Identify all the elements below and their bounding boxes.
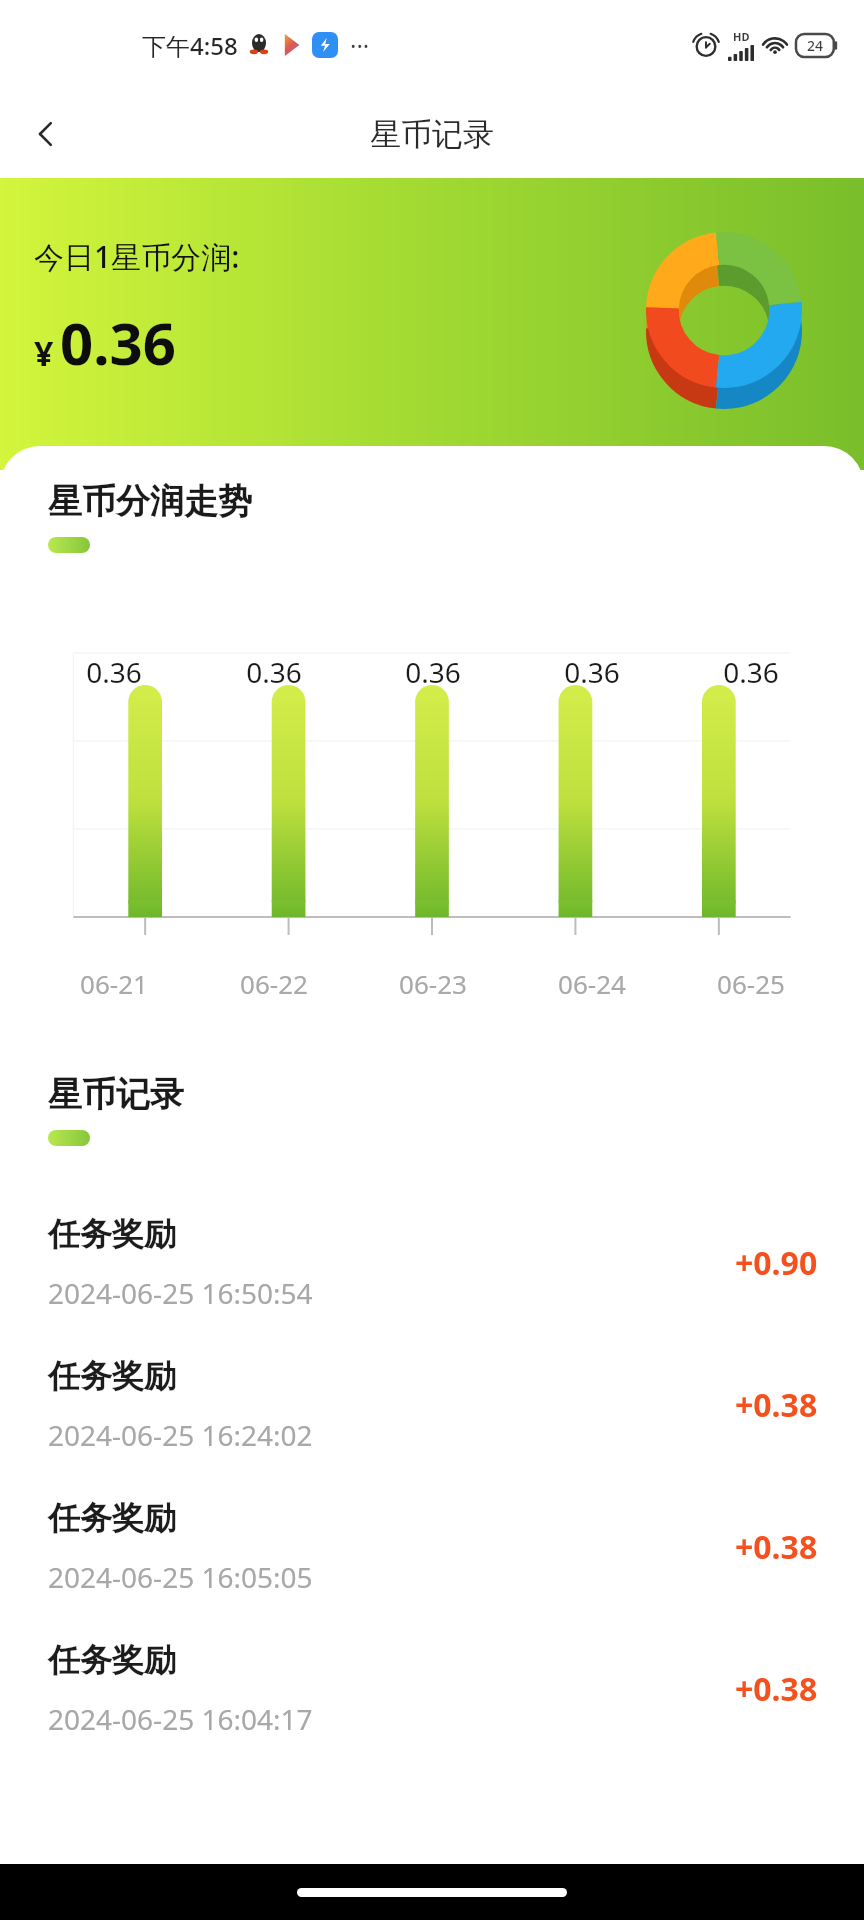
staticText: 2024-06-25 16:24:02	[48, 1416, 313, 1454]
staticText: 星币记录	[48, 1073, 184, 1116]
staticText: 0.36	[405, 653, 461, 691]
staticText: 任务奖励	[48, 1214, 176, 1254]
staticText: 2024-06-25 16:04:17	[48, 1700, 313, 1738]
staticText: 06-21	[80, 966, 148, 1001]
staticText: 下午4:58	[142, 29, 238, 62]
staticText: 任务奖励	[48, 1640, 176, 1680]
staticText: +0.38	[735, 1383, 818, 1427]
staticText: +0.38	[735, 1667, 818, 1711]
staticText: 24	[807, 36, 824, 55]
staticText: 06-22	[240, 966, 308, 1001]
staticText: ¥	[34, 330, 54, 376]
staticText: +0.38	[735, 1525, 818, 1569]
staticText: 星币记录	[370, 115, 494, 154]
button[interactable]: 任务奖励	[0, 1618, 864, 1760]
staticText: +0.90	[735, 1241, 818, 1285]
staticText: 0.36	[564, 653, 620, 691]
staticText: 0.36	[723, 653, 779, 691]
button[interactable]: 任务奖励	[0, 1334, 864, 1476]
staticText: ···	[350, 29, 370, 62]
staticText: 06-23	[399, 966, 467, 1001]
staticText: 0.36	[246, 653, 302, 691]
staticText: 任务奖励	[48, 1356, 176, 1396]
staticText: 06-25	[717, 966, 785, 1001]
staticText: 星币分润走势	[48, 480, 252, 523]
staticText: 2024-06-25 16:50:54	[48, 1274, 313, 1312]
button[interactable]: Back	[18, 106, 74, 162]
staticText: 2024-06-25 16:05:05	[48, 1558, 313, 1596]
staticText: HD	[733, 29, 750, 44]
staticText: 06-24	[558, 966, 626, 1001]
staticText: 任务奖励	[48, 1498, 176, 1538]
staticText: 0.36	[86, 653, 142, 691]
button[interactable]: 任务奖励	[0, 1192, 864, 1334]
button[interactable]: 任务奖励	[0, 1476, 864, 1618]
staticText: 今日1星币分润:	[34, 236, 240, 277]
staticText: 0.36	[60, 303, 176, 382]
